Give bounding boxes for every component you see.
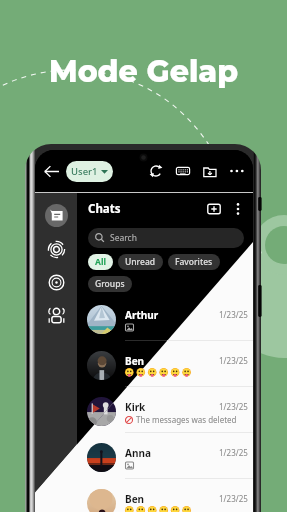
button[interactable]: Ben [77, 341, 253, 387]
staticText: Ben [125, 354, 145, 368]
button[interactable]: Keyboard [176, 164, 190, 178]
button[interactable]: Ben [77, 479, 253, 512]
staticText: Arthur [125, 308, 159, 322]
button[interactable]: Anna [77, 433, 253, 479]
staticText: 1/23/25 [219, 355, 248, 366]
button[interactable]: Unread [118, 254, 163, 270]
button[interactable]: Favorites [168, 254, 220, 270]
staticText: The messages was deleted [136, 414, 237, 425]
button[interactable]: All [88, 254, 113, 270]
staticText: Mode Gelap [0, 53, 287, 90]
button[interactable]: Calls [47, 273, 66, 292]
staticText: 1/23/25 [219, 447, 248, 458]
staticText: Ben [125, 492, 145, 506]
button[interactable]: User1 [66, 161, 113, 182]
button[interactable]: Keyboard [176, 164, 190, 178]
button[interactable]: More options [230, 164, 244, 178]
button[interactable]: Kirk [77, 387, 253, 433]
button[interactable]: Downloads [203, 164, 217, 178]
staticText: 1/23/25 [219, 309, 248, 320]
button[interactable]: Downloads [203, 164, 217, 178]
button[interactable]: Kirk [77, 387, 253, 433]
button[interactable]: User1 [66, 161, 113, 182]
staticText: Groups [95, 278, 125, 290]
staticText: Arthur [125, 308, 159, 322]
staticText: Unread [125, 256, 156, 268]
button[interactable]: Groups [88, 276, 132, 292]
button[interactable]: Updates [47, 240, 66, 259]
staticText: Groups [95, 278, 125, 290]
staticText: All [95, 256, 106, 268]
button[interactable]: Refresh [149, 164, 163, 178]
staticText: 1/23/25 [219, 401, 248, 412]
button[interactable]: Arthur [77, 295, 253, 341]
staticText: Ben [125, 492, 145, 506]
button[interactable]: Updates [47, 240, 66, 259]
staticText: 1/23/25 [219, 309, 248, 320]
staticText: User1 [71, 165, 98, 178]
staticText: Search [110, 232, 137, 244]
staticText: 1/23/25 [219, 493, 248, 504]
staticText: Chats [88, 201, 121, 217]
button[interactable]: Anna [77, 433, 253, 479]
staticText: User1 [71, 165, 98, 178]
staticText: The messages was deleted [136, 414, 237, 425]
button[interactable]: Calls [47, 273, 66, 292]
staticText: All [95, 256, 106, 268]
staticText: 1/23/25 [219, 401, 248, 412]
button[interactable]: Arthur [77, 295, 253, 341]
button[interactable]: New chat [207, 202, 221, 216]
button[interactable]: All [88, 254, 113, 270]
button[interactable]: Back [41, 161, 61, 181]
button[interactable]: Ben [77, 341, 253, 387]
button[interactable]: Favorites [168, 254, 220, 270]
button[interactable]: New chat [207, 202, 221, 216]
staticText: Search [110, 232, 137, 244]
staticText: 1/23/25 [219, 493, 248, 504]
staticText: Chats [88, 201, 121, 217]
button[interactable]: More options [230, 164, 244, 178]
staticText: 1/23/25 [219, 447, 248, 458]
button[interactable]: Back [41, 161, 61, 181]
button[interactable]: Groups [88, 276, 132, 292]
button[interactable]: Chats [45, 204, 68, 227]
button[interactable]: Menu [231, 202, 245, 216]
button[interactable]: Communities [47, 306, 66, 325]
staticText: Unread [125, 256, 156, 268]
button[interactable]: Unread [118, 254, 163, 270]
staticText: Anna [125, 446, 151, 460]
button[interactable]: Search [88, 228, 244, 248]
button[interactable]: Menu [231, 202, 245, 216]
staticText: Favorites [175, 256, 213, 268]
staticText: Kirk [125, 400, 146, 414]
button[interactable]: Search [88, 228, 244, 248]
staticText: 1/23/25 [219, 355, 248, 366]
button[interactable]: Communities [47, 306, 66, 325]
button[interactable]: Ben [77, 479, 253, 512]
staticText: Ben [125, 354, 145, 368]
staticText: Anna [125, 446, 151, 460]
staticText: Favorites [175, 256, 213, 268]
staticText: Kirk [125, 400, 146, 414]
button[interactable]: Chats [45, 204, 68, 227]
button[interactable]: Refresh [149, 164, 163, 178]
